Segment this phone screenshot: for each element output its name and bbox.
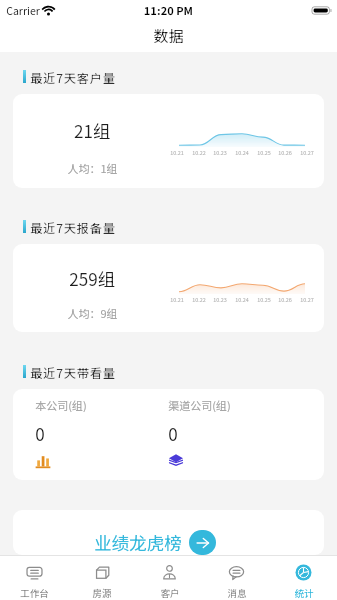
staticText: 最近7天报备量: [30, 219, 116, 234]
staticText: 10.25: [257, 149, 271, 157]
staticText: 数据: [153, 25, 184, 47]
staticText: 10.26: [278, 296, 292, 304]
staticText: 统计: [294, 586, 314, 600]
button[interactable]: 客户: [136, 556, 203, 600]
staticText: 10.26: [278, 149, 292, 157]
staticText: 11:20 PM: [144, 2, 193, 18]
staticText: 10.27: [300, 296, 314, 304]
staticText: 21组: [74, 118, 110, 143]
staticText: 10.21: [170, 149, 184, 157]
staticText: 10.25: [257, 296, 271, 304]
button[interactable]: 工作台: [0, 556, 68, 600]
staticText: 业绩龙虎榜: [94, 530, 182, 555]
staticText: 259组: [69, 266, 115, 291]
staticText: 消息: [227, 586, 247, 600]
staticText: 10.23: [213, 149, 227, 157]
staticText: 工作台: [20, 586, 49, 600]
button[interactable]: 本公司(组): [13, 389, 324, 480]
staticText: 0: [168, 421, 178, 446]
staticText: 10.24: [235, 149, 249, 157]
staticText: 人均：9组: [67, 305, 118, 321]
staticText: 最近7天带看量: [30, 364, 116, 379]
button[interactable]: 房源: [68, 556, 136, 600]
button[interactable]: 业绩龙虎榜: [13, 510, 324, 555]
button[interactable]: 21组: [13, 94, 324, 188]
staticText: 人均：1组: [67, 160, 118, 176]
button[interactable]: 259组: [13, 244, 324, 332]
staticText: 10.23: [213, 296, 227, 304]
button[interactable]: 统计: [270, 556, 337, 600]
staticText: 本公司(组): [35, 397, 87, 413]
staticText: 0: [35, 421, 45, 446]
staticText: 10.21: [170, 296, 184, 304]
button[interactable]: 消息: [203, 556, 270, 600]
staticText: 10.22: [192, 149, 206, 157]
staticText: Carrier: [6, 3, 40, 18]
staticText: 10.22: [192, 296, 206, 304]
staticText: 房源: [92, 586, 112, 600]
staticText: 最近7天客户量: [30, 69, 116, 84]
staticText: 10.27: [300, 149, 314, 157]
staticText: 10.24: [235, 296, 249, 304]
staticText: 渠道公司(组): [168, 397, 231, 413]
staticText: 客户: [160, 586, 180, 600]
